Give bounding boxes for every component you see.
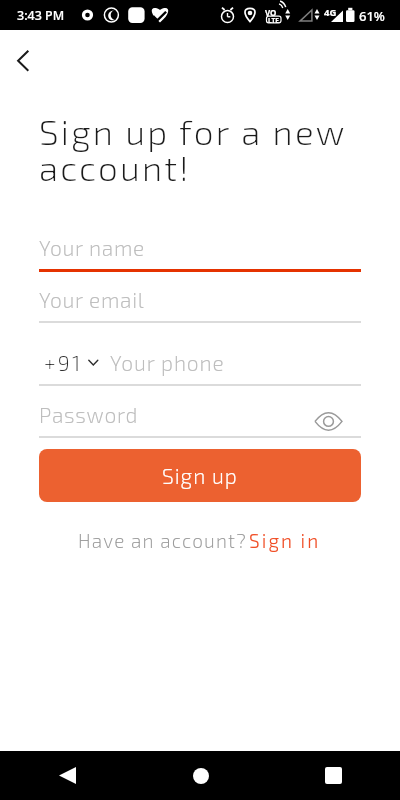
staticText: Sign in — [249, 529, 321, 552]
button[interactable]: Show password — [307, 401, 351, 441]
staticText: LTE — [268, 16, 279, 25]
button[interactable]: Select country code — [40, 350, 100, 376]
button[interactable]: Expand country codes — [84, 350, 106, 376]
staticText: +91 — [44, 350, 83, 375]
button[interactable]: Recents — [267, 751, 400, 800]
staticText: Your email — [39, 287, 145, 311]
button[interactable]: Your email — [39, 287, 361, 311]
staticText: Sign up — [162, 463, 238, 488]
button[interactable]: Sign up — [39, 449, 361, 502]
button[interactable]: Password — [39, 402, 361, 426]
staticText: VO — [265, 7, 277, 18]
staticText: 3:43 PM — [17, 7, 65, 24]
button[interactable]: Back — [2, 38, 46, 82]
staticText: Your phone — [110, 350, 225, 375]
staticText: Password — [39, 402, 139, 426]
staticText: 61% — [359, 7, 385, 25]
button[interactable]: Sign in — [249, 529, 321, 553]
button[interactable]: Your name — [39, 235, 361, 259]
button[interactable]: Home — [134, 751, 267, 800]
button[interactable]: Your phone — [110, 350, 361, 376]
staticText: Sign up for a new account! — [39, 110, 347, 188]
staticText: 4G — [324, 6, 337, 19]
button[interactable]: Back — [0, 751, 134, 800]
staticText: Have an account? — [78, 529, 248, 552]
staticText: Your name — [39, 235, 145, 259]
